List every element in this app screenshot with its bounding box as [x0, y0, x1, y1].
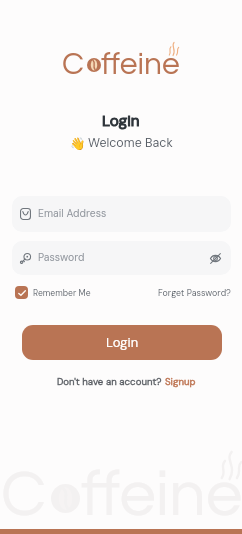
staticText: LogIn — [102, 111, 140, 131]
button[interactable]: Forget Password? — [158, 287, 231, 298]
staticText: C — [62, 48, 84, 81]
staticText: LogIn — [102, 111, 140, 131]
staticText: Signup — [165, 375, 196, 387]
staticText: Don't have an account? — [57, 375, 165, 387]
staticText: Email Address — [38, 207, 107, 221]
staticText: ffeine — [101, 48, 180, 81]
staticText: ffeine — [81, 462, 242, 529]
staticText: Login — [106, 334, 139, 351]
staticText: Remember Me — [33, 287, 91, 298]
staticText: Signup — [165, 375, 196, 387]
staticText: 👋 — [70, 136, 86, 151]
button[interactable]: Remember Me — [12, 286, 91, 299]
staticText: C — [1, 462, 46, 529]
button[interactable]: Show password — [209, 252, 222, 265]
button[interactable]: Signup — [165, 375, 196, 387]
button[interactable]: Login — [22, 325, 222, 360]
button[interactable]: Email Address — [12, 196, 231, 232]
staticText: Password — [38, 251, 209, 265]
staticText: Don't have an account? — [57, 375, 165, 387]
button[interactable]: Password — [12, 241, 231, 275]
staticText: Welcome Back — [88, 135, 173, 151]
